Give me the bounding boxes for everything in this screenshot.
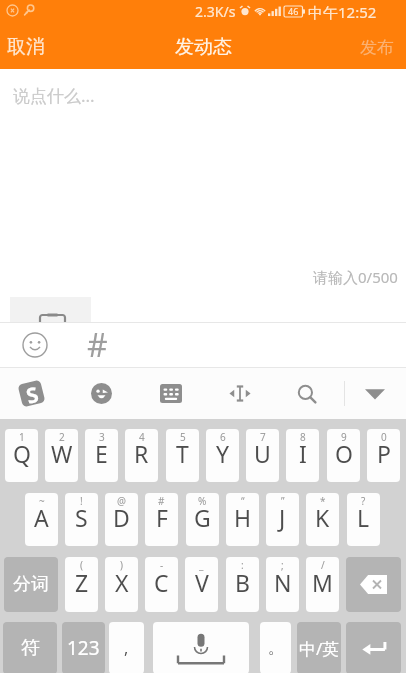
staticText: #	[158, 494, 165, 508]
button[interactable]: 分词	[4, 557, 58, 612]
staticText: 5	[180, 430, 186, 444]
staticText: /	[321, 558, 325, 572]
staticText: H	[234, 502, 252, 533]
button[interactable]: ~	[25, 493, 58, 546]
staticText: 2	[59, 430, 65, 444]
button[interactable]: Emoji	[77, 368, 125, 419]
staticText: O	[335, 438, 353, 469]
button[interactable]: (	[65, 557, 98, 612]
button[interactable]: Backspace	[346, 557, 401, 612]
button[interactable]: 6	[206, 429, 239, 482]
button[interactable]: 4	[125, 429, 158, 482]
button[interactable]: ;	[266, 557, 299, 612]
staticText: %	[198, 494, 207, 508]
button[interactable]: 1	[5, 429, 38, 482]
button[interactable]: %	[186, 493, 219, 546]
staticText: 46	[288, 5, 299, 17]
staticText: 8	[300, 430, 306, 444]
button[interactable]: “	[226, 493, 259, 546]
staticText: #	[87, 323, 108, 367]
button[interactable]: -	[145, 557, 178, 612]
button[interactable]: :	[226, 557, 259, 612]
button[interactable]: 3	[85, 429, 118, 482]
staticText: ,	[124, 637, 129, 659]
button[interactable]: *	[306, 493, 339, 546]
button[interactable]: Space	[153, 622, 249, 673]
button[interactable]: /	[306, 557, 339, 612]
staticText: )	[120, 558, 123, 572]
button[interactable]: @	[105, 493, 138, 546]
button[interactable]: 。	[260, 622, 291, 673]
staticText: 中/英	[299, 637, 340, 660]
staticText: V	[195, 567, 209, 598]
button[interactable]: Emoji	[13, 322, 57, 368]
button[interactable]: 8	[286, 429, 319, 482]
button[interactable]: 123	[62, 622, 105, 673]
staticText: Y	[216, 438, 230, 469]
button[interactable]: 取消	[0, 25, 52, 69]
button[interactable]: Move cursor	[216, 368, 264, 419]
staticText: A	[34, 502, 49, 533]
staticText: 取消	[7, 35, 45, 59]
staticText: N	[274, 567, 292, 598]
button[interactable]: 符	[3, 622, 57, 673]
button[interactable]: ,	[109, 622, 144, 673]
button[interactable]: 0	[367, 429, 400, 482]
staticText: Z	[75, 567, 89, 598]
button[interactable]: Add photo	[10, 297, 91, 378]
staticText: Q	[13, 438, 31, 469]
staticText: 4	[139, 430, 145, 444]
staticText: 0	[381, 430, 387, 444]
button[interactable]: ”	[266, 493, 299, 546]
button[interactable]: 7	[246, 429, 279, 482]
button[interactable]: 9	[327, 429, 360, 482]
staticText: 123	[67, 635, 100, 661]
button[interactable]: Search	[283, 368, 331, 419]
staticText: K	[315, 502, 330, 533]
staticText: 符	[21, 636, 40, 660]
staticText: L	[357, 502, 370, 533]
staticText: “	[241, 494, 245, 508]
staticText: P	[377, 438, 391, 469]
staticText: S	[23, 380, 40, 405]
staticText: 发动态	[175, 35, 232, 59]
button[interactable]: ?	[347, 493, 380, 546]
button[interactable]: Sogou keyboard	[7, 368, 55, 419]
button[interactable]: Topic	[75, 322, 119, 368]
button[interactable]: !	[65, 493, 98, 546]
staticText: B	[235, 567, 250, 598]
button[interactable]: #	[145, 493, 178, 546]
staticText: D	[113, 502, 130, 533]
staticText: !	[80, 494, 83, 508]
staticText: _	[199, 558, 204, 572]
staticText: 7	[260, 430, 266, 444]
staticText: 2.3K/s	[195, 2, 236, 20]
button[interactable]: 2	[45, 429, 78, 482]
button[interactable]: Enter	[346, 622, 401, 673]
button[interactable]: 中/英	[297, 622, 341, 673]
staticText: C	[154, 567, 169, 598]
staticText: 请输入0/500	[313, 267, 398, 287]
staticText: ;	[281, 558, 284, 572]
staticText: 9	[341, 430, 347, 444]
staticText: -	[160, 558, 164, 572]
button[interactable]: _	[185, 557, 218, 612]
staticText: 中午12:52	[308, 2, 377, 20]
staticText: W	[51, 438, 73, 469]
button[interactable]: 5	[166, 429, 199, 482]
staticText: ”	[281, 494, 285, 508]
staticText: I	[299, 438, 307, 469]
button[interactable]: Keyboard layout	[147, 368, 195, 419]
staticText: ?	[361, 494, 366, 508]
staticText: 说点什么...	[13, 84, 95, 107]
staticText: U	[254, 438, 271, 469]
staticText: 3	[99, 430, 105, 444]
button[interactable]: Hide keyboard	[351, 368, 399, 419]
staticText: F	[156, 502, 168, 533]
staticText: *	[320, 494, 326, 508]
staticText: @	[117, 494, 126, 508]
button[interactable]: )	[105, 557, 138, 612]
staticText: R	[134, 438, 149, 469]
button[interactable]: 发布	[348, 25, 406, 69]
staticText: (	[80, 558, 83, 572]
